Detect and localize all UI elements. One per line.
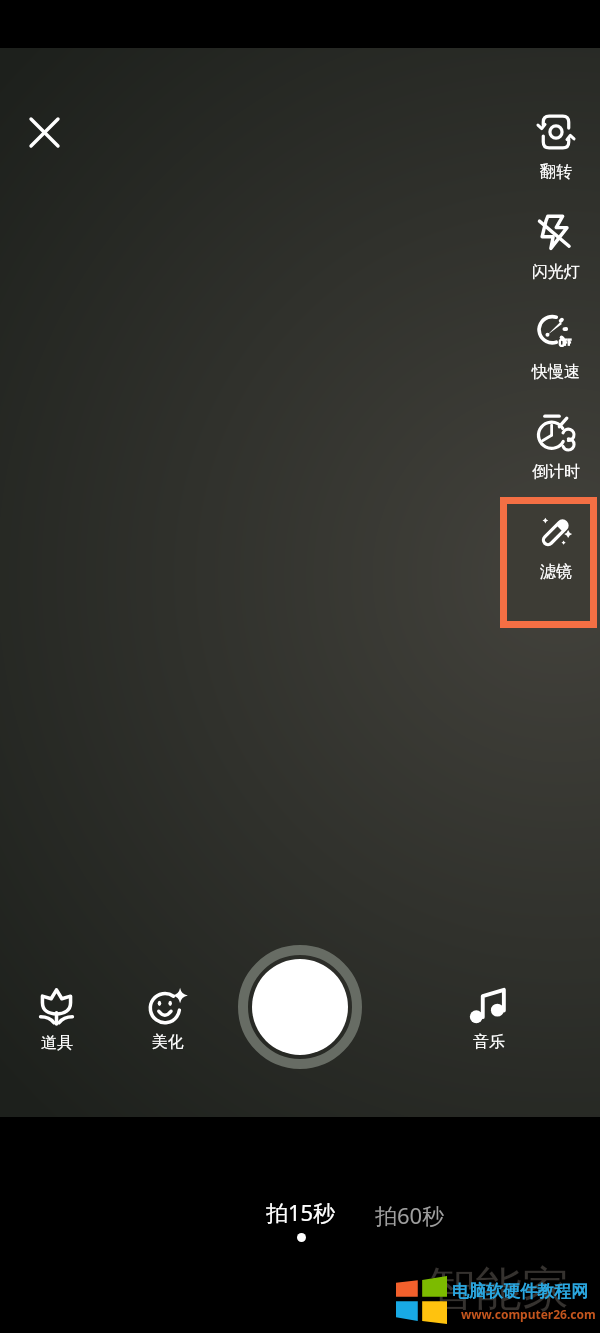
staticText: 快慢速 [532, 362, 580, 382]
staticText: www.computer26.com [461, 1306, 596, 1322]
staticText: 翻转 [540, 162, 572, 182]
staticText: 拍60秒 [375, 1200, 445, 1230]
button[interactable]: 美化 [123, 979, 211, 1055]
button[interactable]: 倒计时 [508, 400, 600, 484]
staticText: 美化 [152, 1032, 184, 1052]
staticText: 电脑软硬件教程网 [452, 1281, 588, 1302]
staticText: 滤镜 [540, 562, 572, 582]
staticText: 拍15秒 [266, 1197, 336, 1227]
staticText: 音乐 [473, 1032, 505, 1052]
button[interactable] [507, 504, 590, 621]
button[interactable]: 拍15秒 [266, 1197, 336, 1242]
staticText: 闪光灯 [532, 262, 580, 282]
staticText: 倒计时 [532, 462, 580, 482]
button[interactable]: 道具 [12, 980, 100, 1056]
button[interactable]: Close [20, 108, 68, 156]
button[interactable]: 滤镜 [508, 500, 600, 584]
button[interactable]: Record [236, 943, 364, 1071]
button[interactable]: 翻转 [508, 100, 600, 184]
button[interactable]: 快慢速 [508, 300, 600, 384]
button[interactable]: 拍60秒 [375, 1200, 445, 1230]
staticText: 智能家 [428, 1260, 569, 1319]
button[interactable]: 音乐 [444, 979, 532, 1055]
staticText: 道具 [41, 1033, 73, 1053]
button[interactable]: 闪光灯 [508, 200, 600, 284]
